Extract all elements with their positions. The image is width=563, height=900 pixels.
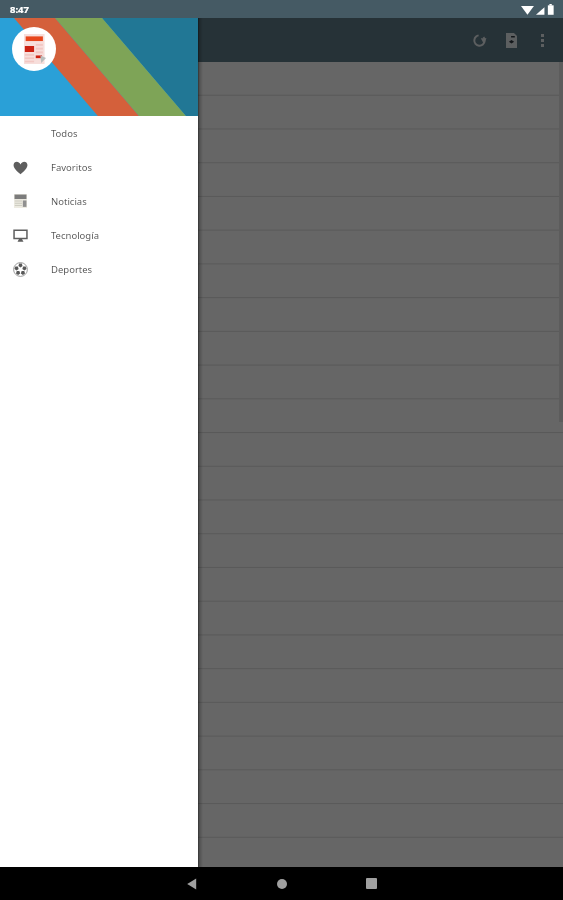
button[interactable]	[0, 538, 563, 572]
button[interactable]	[0, 198, 563, 232]
button[interactable]	[0, 62, 563, 96]
button[interactable]	[0, 504, 563, 538]
button[interactable]	[0, 844, 563, 878]
button[interactable]: Favoritos	[0, 150, 198, 184]
button[interactable]: Home	[265, 867, 298, 900]
button[interactable]: Save	[496, 20, 527, 60]
staticText: 8:47	[10, 3, 29, 16]
button[interactable]	[0, 606, 563, 640]
button[interactable]	[0, 572, 563, 606]
button[interactable]	[0, 334, 563, 368]
button[interactable]	[0, 130, 563, 164]
staticText: Deportes	[51, 263, 93, 276]
button[interactable]	[0, 674, 563, 708]
button[interactable]	[0, 640, 563, 674]
button[interactable]	[0, 232, 563, 266]
button[interactable]: Tecnología	[0, 218, 198, 252]
button[interactable]	[0, 810, 563, 844]
button[interactable]: Back	[175, 867, 208, 900]
button[interactable]: Refresh	[463, 20, 496, 60]
button[interactable]	[0, 470, 563, 504]
button[interactable]	[0, 776, 563, 810]
button[interactable]	[0, 368, 563, 402]
staticText: Tecnología	[51, 229, 99, 242]
button[interactable]: Noticias	[0, 184, 198, 218]
button[interactable]	[0, 266, 563, 300]
button[interactable]	[0, 436, 563, 470]
button[interactable]	[0, 300, 563, 334]
button[interactable]	[0, 402, 563, 436]
staticText: Todos	[51, 127, 78, 140]
button[interactable]: More options	[527, 20, 557, 60]
staticText: Favoritos	[51, 161, 92, 174]
staticText: Noticias	[51, 195, 87, 208]
button[interactable]: Recents	[355, 867, 388, 900]
button[interactable]: Todos	[0, 116, 198, 150]
button[interactable]	[0, 708, 563, 742]
button[interactable]: Deportes	[0, 252, 198, 286]
button[interactable]	[0, 164, 563, 198]
button[interactable]	[0, 96, 563, 130]
button[interactable]	[0, 742, 563, 776]
